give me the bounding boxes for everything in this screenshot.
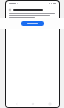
button[interactable] [21,21,44,26]
button[interactable]: Home [26,100,39,107]
button[interactable]: Info [9,9,56,11]
button[interactable]: Recents [43,100,56,107]
